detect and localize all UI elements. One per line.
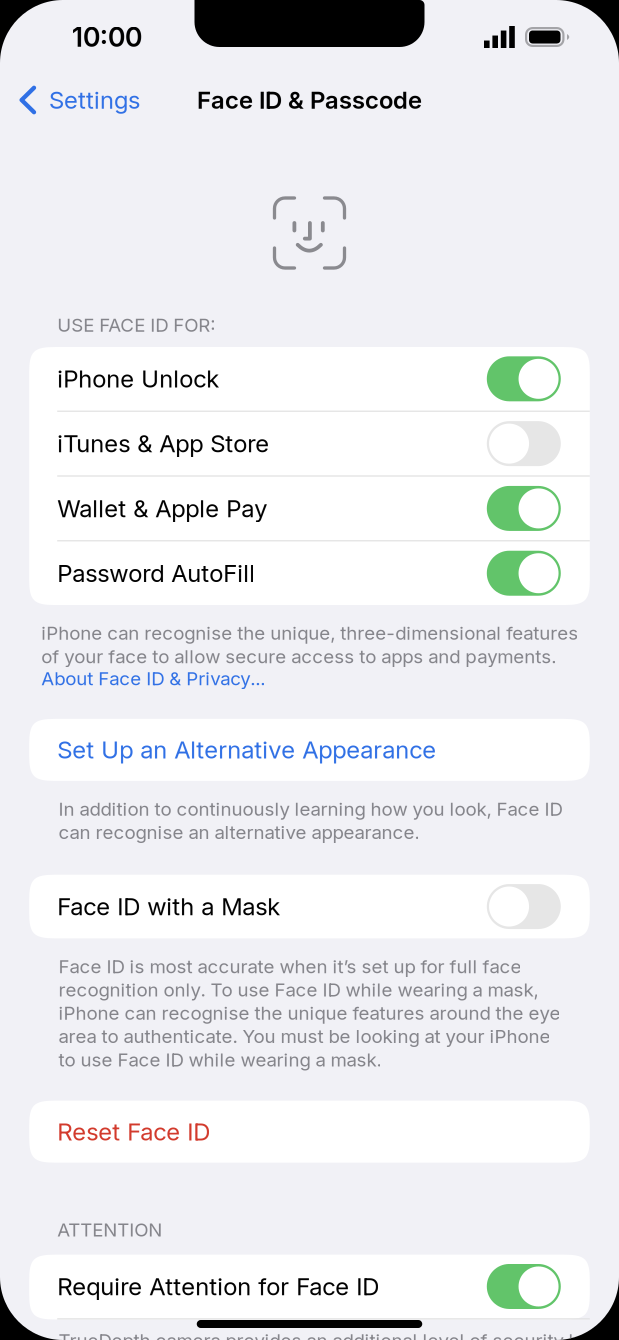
staticText: USE FACE ID FOR: — [57, 314, 215, 336]
staticText: iPhone can recognise the unique, three-d… — [41, 622, 578, 667]
staticText: Wallet & Apple Pay — [57, 494, 267, 523]
staticText: Set Up an Alternative Appearance — [57, 736, 436, 764]
button[interactable]: Wallet & Apple Pay — [29, 477, 590, 540]
button[interactable]: Password AutoFill — [29, 541, 590, 605]
staticText: TrueDepth camera provides an additional … — [58, 1329, 589, 1340]
button[interactable]: About Face ID & Privacy... — [0, 667, 619, 689]
staticText: ATTENTION — [57, 1219, 162, 1241]
button[interactable]: iPhone Unlock — [29, 347, 590, 411]
staticText: 10:00 — [72, 21, 142, 53]
staticText: iPhone Unlock — [57, 365, 219, 393]
staticText: Password AutoFill — [57, 559, 255, 587]
staticText: iTunes & App Store — [57, 429, 269, 458]
button[interactable]: Set Up an Alternative Appearance — [29, 719, 590, 781]
staticText: Face ID is most accurate when it’s set u… — [58, 955, 560, 1071]
button[interactable]: Face ID with a Mask — [29, 875, 590, 938]
staticText: In addition to continuously learning how… — [58, 798, 562, 843]
button[interactable]: iTunes & App Store — [29, 412, 590, 475]
staticText: About Face ID & Privacy... — [41, 667, 265, 689]
button[interactable]: Require Attention for Face ID — [29, 1255, 590, 1318]
staticText: Settings — [49, 86, 140, 114]
button[interactable]: Reset Face ID — [29, 1101, 590, 1163]
staticText: Reset Face ID — [57, 1117, 210, 1146]
staticText: Face ID & Passcode — [197, 86, 422, 114]
staticText: Require Attention for Face ID — [57, 1272, 379, 1301]
button[interactable]: Settings — [0, 74, 152, 126]
staticText: Face ID with a Mask — [57, 892, 280, 921]
